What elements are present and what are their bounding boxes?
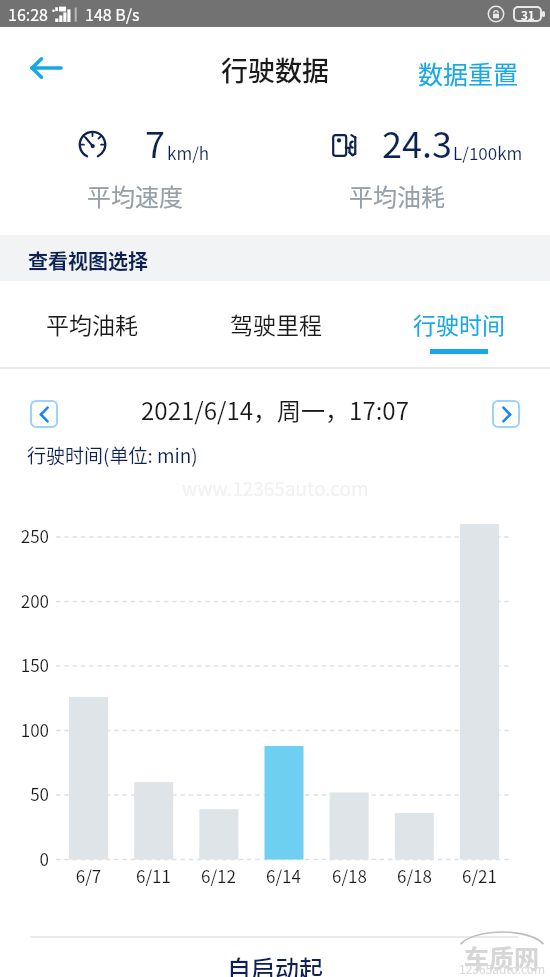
staticText: 24.3 (382, 116, 452, 168)
staticText: 2021/6/14，周一，17:07 (141, 392, 410, 427)
staticText: 自启动起 (227, 950, 323, 977)
staticText: L/100km (453, 140, 523, 165)
button[interactable]: Previous day (30, 400, 58, 428)
staticText: 车质网 (464, 939, 540, 975)
staticText: 12365auto.com (459, 960, 546, 977)
staticText: 16:28 (8, 2, 48, 25)
staticText: 6/14 (251, 863, 316, 888)
staticText: 6/18 (317, 863, 382, 888)
staticText: 驾驶里程 (230, 307, 322, 340)
staticText: 0 (0, 846, 49, 871)
button[interactable]: 平均油耗 (0, 281, 184, 367)
staticText: 平均速度 (87, 178, 183, 213)
button[interactable]: Next day (492, 400, 520, 428)
staticText: 31 (521, 6, 535, 22)
staticText: 200 (0, 588, 49, 613)
staticText: 150 (0, 652, 49, 677)
staticText: 7 (145, 116, 165, 168)
staticText: 行驶时间(单位: min) (27, 441, 198, 469)
staticText: 平均油耗 (46, 307, 138, 340)
staticText: 行驶数据 (221, 50, 329, 89)
staticText: 6/7 (56, 863, 121, 888)
staticText: 250 (0, 523, 49, 548)
staticText: www.12365auto.com (182, 474, 369, 502)
button[interactable]: Back (18, 40, 74, 96)
staticText: 数据重置 (418, 55, 519, 91)
staticText: 平均油耗 (349, 178, 445, 213)
button[interactable]: 自启动起 (0, 938, 550, 977)
button[interactable]: 驾驶里程 (184, 281, 367, 367)
staticText: 100 (0, 717, 49, 742)
staticText: 50 (0, 781, 49, 806)
staticText: 148 B/s (85, 2, 140, 25)
staticText: 查看视图选择 (28, 246, 148, 275)
staticText: 6/18 (382, 863, 447, 888)
staticText: 6/11 (121, 863, 186, 888)
staticText: 6/12 (186, 863, 251, 888)
staticText: 行驶时间 (413, 307, 505, 340)
button[interactable]: 数据重置 (402, 47, 550, 99)
staticText: 6/21 (447, 863, 512, 888)
button[interactable]: 行驶时间 (367, 281, 550, 367)
staticText: km/h (167, 140, 210, 165)
